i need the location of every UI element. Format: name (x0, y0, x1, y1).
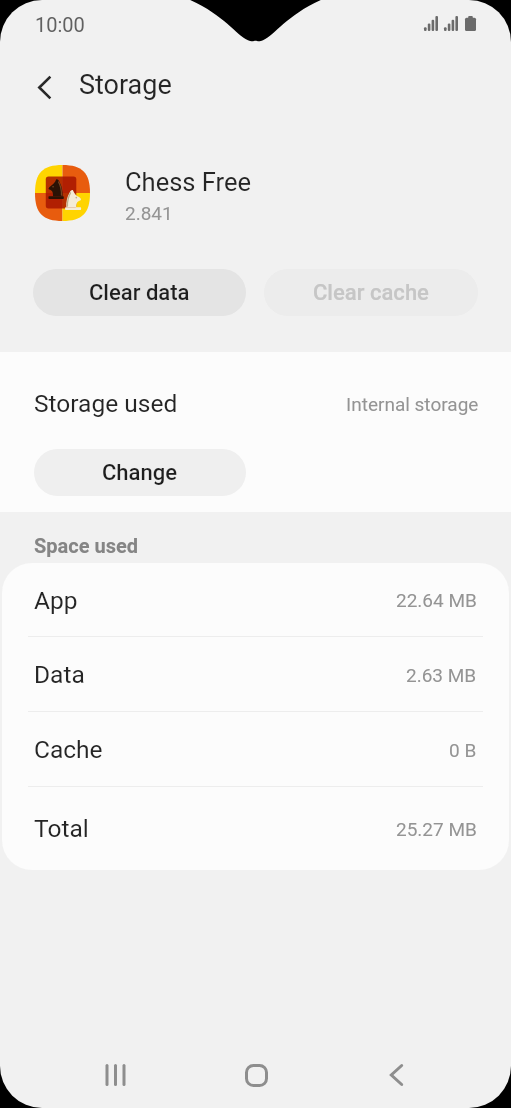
staticText: Space used (34, 534, 139, 557)
button[interactable]: Clear data (33, 269, 246, 316)
button[interactable]: Back (326, 1042, 466, 1108)
staticText: Clear cache (313, 280, 429, 306)
staticText: 25.27 MB (396, 818, 477, 840)
staticText: Clear data (89, 280, 190, 306)
staticText: Cache (34, 735, 103, 764)
staticText: Data (34, 660, 85, 689)
staticText: 22.64 MB (396, 589, 477, 611)
button[interactable]: Change (34, 449, 246, 496)
staticText: Internal storage (346, 393, 479, 415)
staticText: App (34, 586, 78, 615)
staticText: Storage (79, 69, 172, 101)
staticText: Total (34, 814, 89, 843)
button[interactable]: Home (186, 1042, 326, 1108)
staticText: Chess Free (125, 167, 252, 197)
button[interactable]: Back (16, 59, 72, 115)
button[interactable]: Cache (2, 712, 509, 787)
staticText: 0 B (449, 739, 477, 761)
button[interactable]: App (2, 563, 509, 637)
button[interactable]: Data (2, 637, 509, 712)
staticText: 2.63 MB (406, 664, 477, 686)
button[interactable]: Total (2, 787, 509, 870)
staticText: Change (102, 460, 178, 486)
button[interactable]: Clear cache (264, 269, 478, 316)
staticText: 2.841 (125, 202, 173, 224)
button[interactable]: Recents (45, 1042, 186, 1108)
staticText: 10:00 (35, 13, 85, 36)
staticText: Storage used (34, 389, 178, 418)
